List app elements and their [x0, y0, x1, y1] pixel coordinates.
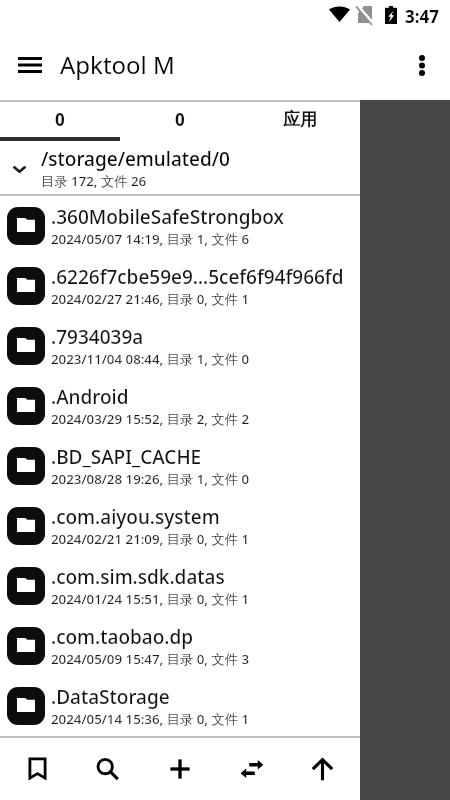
button[interactable]: .DataStorage	[0, 676, 360, 736]
staticText: .6226f7cbe59e9…5cef6f94f966fd	[51, 264, 344, 290]
button[interactable]: 应用	[240, 102, 360, 137]
staticText: 2024/05/07 14:19, 目录 1, 文件 6	[51, 230, 250, 248]
button[interactable]: 0	[0, 102, 120, 137]
button[interactable]: /storage/emulated/0	[0, 141, 360, 194]
staticText: .360MobileSafeStrongbox	[51, 204, 284, 230]
staticText: 2024/01/24 15:51, 目录 0, 文件 1	[51, 590, 250, 608]
staticText: 2023/08/28 19:26, 目录 1, 文件 0	[51, 470, 250, 488]
button[interactable]: Add	[144, 738, 216, 800]
button[interactable]: Up	[288, 738, 360, 800]
button[interactable]: Search	[72, 738, 144, 800]
staticText: .7934039a	[51, 324, 144, 350]
staticText: /storage/emulated/0	[41, 146, 230, 172]
button[interactable]: .BD_SAPI_CACHE	[0, 436, 360, 496]
staticText: 2024/03/29 15:52, 目录 2, 文件 2	[51, 410, 250, 428]
staticText: .DataStorage	[51, 684, 170, 710]
button[interactable]: .6226f7cbe59e9…5cef6f94f966fd	[0, 256, 360, 316]
staticText: .BD_SAPI_CACHE	[51, 444, 202, 470]
button[interactable]: Transfer	[216, 738, 288, 800]
button[interactable]: Menu	[0, 30, 60, 100]
button[interactable]: .360MobileSafeStrongbox	[0, 196, 360, 256]
staticText: 目录 172, 文件 26	[41, 172, 147, 190]
staticText: 2024/02/27 21:46, 目录 0, 文件 1	[51, 290, 250, 308]
staticText: .com.taobao.dp	[51, 624, 194, 650]
staticText: 3:47	[405, 5, 439, 28]
staticText: 0	[55, 108, 65, 131]
button[interactable]: 0	[120, 102, 240, 137]
button[interactable]: .7934039a	[0, 316, 360, 376]
staticText: Apktool M	[60, 48, 175, 81]
staticText: 应用	[283, 109, 317, 130]
staticText: 2024/05/09 15:47, 目录 0, 文件 3	[51, 650, 250, 668]
button[interactable]: .com.aiyou.system	[0, 496, 360, 556]
staticText: 2024/05/14 15:36, 目录 0, 文件 1	[51, 710, 250, 728]
button[interactable]: More options	[394, 30, 450, 100]
staticText: 0	[175, 108, 185, 131]
staticText: .com.aiyou.system	[51, 504, 220, 530]
button[interactable]: .com.sim.sdk.datas	[0, 556, 360, 616]
button[interactable]: Bookmarks	[0, 738, 72, 800]
staticText: .Android	[51, 384, 129, 410]
button[interactable]: .Android	[0, 376, 360, 436]
staticText: 2024/02/21 21:09, 目录 0, 文件 1	[51, 530, 250, 548]
button[interactable]: .com.taobao.dp	[0, 616, 360, 676]
staticText: 2023/11/04 08:44, 目录 1, 文件 0	[51, 350, 250, 368]
staticText: .com.sim.sdk.datas	[51, 564, 225, 590]
